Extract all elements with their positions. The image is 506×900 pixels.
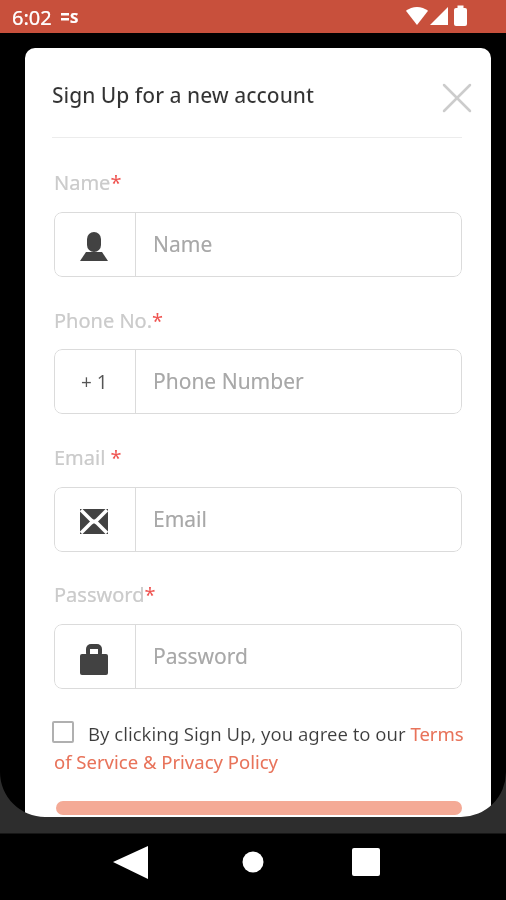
staticText: Name* [54, 169, 122, 196]
staticText: Phone Number [153, 367, 304, 396]
button[interactable] [342, 848, 386, 888]
staticText: Name [153, 230, 213, 259]
staticText: Sign Up for a new account [52, 81, 315, 110]
button[interactable] [232, 850, 274, 890]
staticText: Password* [54, 581, 156, 608]
staticText: + 1 [81, 369, 108, 395]
button[interactable]: of Service & Privacy Policy [54, 749, 278, 774]
staticText: Phone No.* [54, 307, 164, 334]
button[interactable]: By clicking Sign Up, you agree to our Te… [88, 721, 464, 746]
button[interactable]: Password [54, 624, 462, 689]
button[interactable] [56, 801, 462, 815]
staticText: Email [153, 505, 207, 534]
staticText: Password [153, 642, 248, 671]
staticText: S [70, 7, 79, 27]
button[interactable] [441, 82, 473, 114]
button[interactable]: + 1 [54, 349, 462, 414]
button[interactable] [108, 846, 152, 886]
button[interactable]: Email [54, 487, 462, 552]
staticText: 6:02 [12, 4, 52, 31]
button[interactable] [52, 721, 74, 743]
button[interactable]: Name [54, 212, 462, 277]
staticText: Email * [54, 444, 122, 471]
